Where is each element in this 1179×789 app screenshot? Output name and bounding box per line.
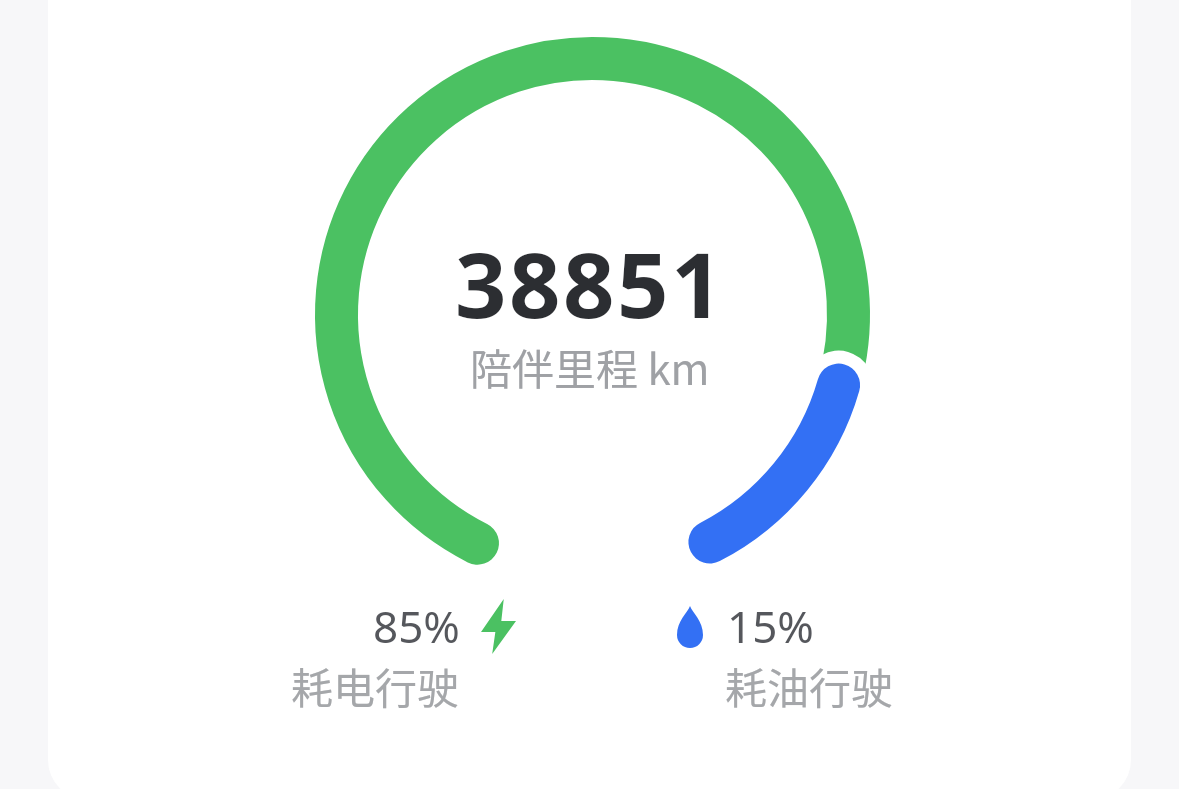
staticText: 38851	[455, 222, 725, 345]
button[interactable]	[48, 0, 1131, 789]
staticText: 耗电行驶	[291, 655, 460, 716]
staticText: 耗油行驶	[725, 655, 894, 716]
staticText: 陪伴里程 km	[470, 336, 710, 397]
staticText: 85%	[373, 596, 460, 656]
staticText: 15%	[727, 596, 814, 656]
